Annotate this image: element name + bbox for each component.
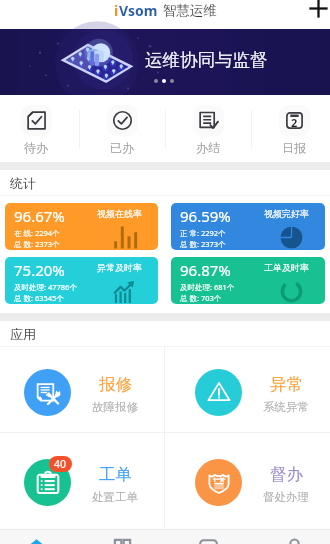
staticText: Vsom	[119, 1, 158, 20]
button[interactable]: 督办	[171, 440, 330, 525]
staticText: 日报	[282, 140, 306, 155]
staticText: 视频在线率	[97, 208, 142, 219]
button[interactable]: 96.87%	[171, 257, 325, 304]
staticText: 故障报修	[92, 400, 138, 414]
button[interactable]: 2	[266, 95, 322, 162]
staticText: 工单	[99, 464, 132, 485]
button[interactable]: 75.20%	[5, 257, 158, 304]
staticText: i	[114, 1, 119, 20]
staticText: 督办	[270, 464, 303, 485]
button[interactable]: 96.67%	[5, 203, 158, 250]
button[interactable]: Add	[309, 0, 328, 18]
staticText: 总 数: 703个	[180, 293, 222, 303]
staticText: 总 数: 2373个	[14, 239, 60, 249]
staticText: 40	[54, 457, 67, 471]
staticText: 智慧运维	[163, 2, 217, 19]
staticText: 运维协同与监督	[145, 49, 268, 71]
staticText: 督处办理	[263, 490, 309, 504]
staticText: 已办	[110, 140, 134, 155]
staticText: 应用	[10, 326, 36, 342]
button[interactable]: 消息	[184, 529, 232, 544]
staticText: 系统异常	[263, 400, 309, 414]
button[interactable]: 办结	[180, 95, 236, 162]
staticText: 及时处理: 47786个	[14, 282, 77, 292]
button[interactable]: 已办	[94, 95, 150, 162]
staticText: 2	[291, 115, 298, 130]
staticText: 96.87%	[180, 260, 231, 280]
button[interactable]: 异常	[171, 350, 330, 435]
staticText: 统计	[10, 175, 36, 191]
staticText: 工单及时率	[264, 262, 309, 273]
staticText: 处置工单	[92, 490, 138, 504]
button[interactable]: 报修	[0, 350, 167, 435]
staticText: 总 数: 2373个	[180, 239, 226, 249]
staticText: 及时处理: 681个	[180, 282, 235, 292]
staticText: 待办	[24, 140, 48, 155]
staticText: 正 常: 2292个	[180, 228, 226, 238]
staticText: 96.59%	[180, 206, 231, 226]
button[interactable]: 应用	[98, 529, 146, 544]
staticText: 视频完好率	[264, 208, 309, 219]
button[interactable]: 96.59%	[171, 203, 325, 250]
staticText: 在 线: 2294个	[14, 228, 60, 238]
staticText: 总 数: 63545个	[14, 293, 64, 303]
button[interactable]: 我的	[270, 529, 318, 544]
button[interactable]: 首页	[12, 529, 60, 544]
staticText: 报修	[99, 374, 132, 395]
staticText: 异常及时率	[97, 262, 142, 273]
button[interactable]: 待办	[8, 95, 64, 162]
staticText: 异常	[270, 374, 303, 395]
staticText: 办结	[196, 140, 220, 155]
staticText: 96.67%	[14, 206, 65, 226]
staticText: 75.20%	[14, 260, 65, 280]
button[interactable]: 40	[0, 440, 167, 525]
